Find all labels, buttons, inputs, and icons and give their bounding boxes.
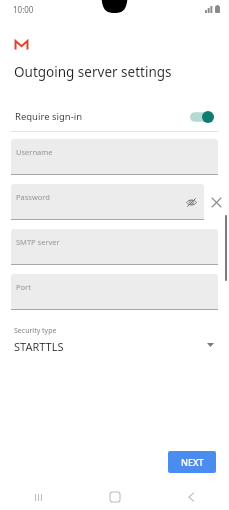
button[interactable]: NEXT [168,451,216,473]
staticText: Password [16,192,50,202]
button[interactable]: Port [11,274,218,310]
button[interactable]: SMTP server [11,229,218,265]
staticText: NEXT [181,456,204,468]
staticText: Security type [14,326,57,336]
staticText: Port [16,282,31,292]
button[interactable]: Password [11,184,204,220]
staticText: SMTP server [16,237,60,247]
staticText: Outgoing server settings [14,63,172,81]
staticText: Require sign-in [15,110,83,123]
button[interactable]: Security type [13,323,216,363]
button[interactable]: Back [153,484,229,510]
button[interactable]: Recents [0,484,77,510]
button[interactable]: Home [77,484,153,510]
button[interactable]: Username [11,139,218,175]
button[interactable]: Require sign-in [15,110,214,123]
button[interactable]: Show password [184,195,198,209]
button[interactable]: Clear [204,184,229,220]
staticText: Username [16,147,53,157]
staticText: 10:00 [13,4,34,15]
staticText: STARTTLS [14,339,64,354]
